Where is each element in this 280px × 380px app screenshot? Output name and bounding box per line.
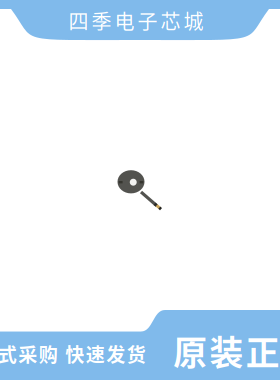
staticText: 快 bbox=[65, 340, 84, 368]
staticText: 子 bbox=[137, 6, 157, 35]
staticText: 城 bbox=[183, 6, 203, 35]
staticText: 电 bbox=[114, 6, 134, 35]
staticText: 采 bbox=[18, 340, 37, 368]
staticText: 正 bbox=[246, 326, 280, 375]
staticText: 发 bbox=[106, 340, 125, 368]
staticText: 货 bbox=[127, 340, 146, 368]
staticText: 速 bbox=[86, 340, 105, 368]
staticText: 季 bbox=[91, 6, 111, 35]
staticText: 装 bbox=[209, 326, 243, 375]
staticText: 芯 bbox=[160, 6, 180, 35]
staticText: 购 bbox=[39, 340, 58, 368]
staticText: 四 bbox=[68, 6, 88, 35]
staticText: 式 bbox=[0, 340, 17, 368]
staticText: 原 bbox=[173, 326, 207, 375]
